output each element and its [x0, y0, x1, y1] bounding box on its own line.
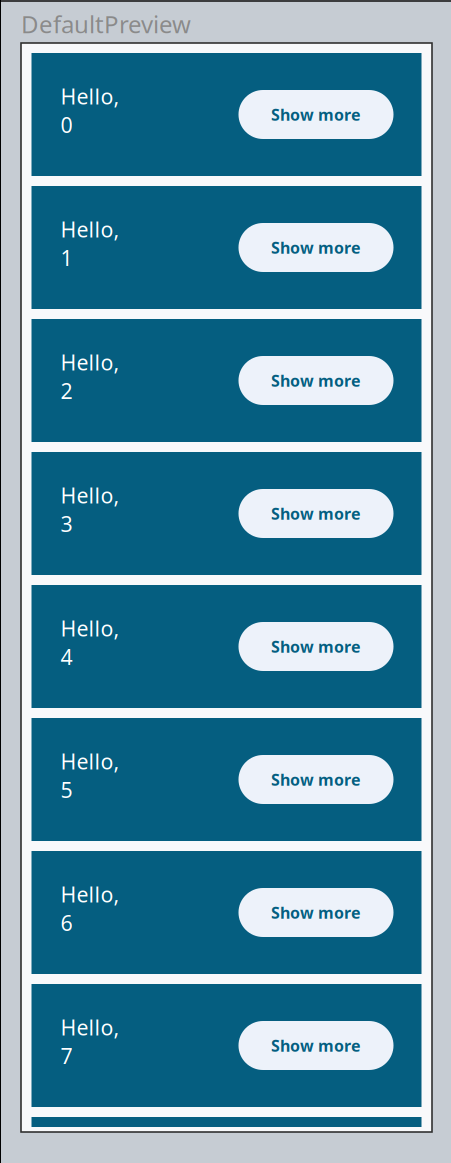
staticText: Show more	[271, 636, 361, 657]
staticText: 0	[60, 110, 72, 139]
staticText: Hello,	[60, 82, 119, 110]
staticText: 6	[60, 908, 72, 937]
staticText: Hello,	[60, 880, 119, 908]
staticText: Hello,	[60, 481, 119, 509]
staticText: Show more	[271, 769, 361, 790]
staticText: 1	[60, 243, 72, 272]
staticText: 5	[60, 775, 72, 804]
staticText: Show more	[271, 902, 361, 923]
button[interactable]: Show more	[238, 622, 393, 671]
button[interactable]: Show more	[238, 1021, 393, 1070]
staticText: Show more	[271, 1035, 361, 1056]
button[interactable]: Show more	[238, 223, 393, 272]
staticText: Hello,	[60, 348, 119, 376]
staticText: Hello,	[60, 747, 119, 775]
staticText: Show more	[271, 503, 361, 524]
staticText: Hello,	[60, 1013, 119, 1041]
button[interactable]: Show more	[238, 489, 393, 538]
staticText: Hello,	[60, 215, 119, 243]
staticText: 7	[60, 1041, 72, 1070]
button[interactable]: Show more	[238, 888, 393, 937]
staticText: 2	[60, 376, 72, 405]
button[interactable]: Show more	[238, 90, 393, 139]
staticText: Show more	[271, 370, 361, 391]
button[interactable]: Show more	[238, 356, 393, 405]
staticText: DefaultPreview	[21, 8, 191, 40]
staticText: Hello,	[60, 614, 119, 642]
staticText: Show more	[271, 104, 361, 125]
staticText: 3	[60, 509, 72, 538]
staticText: Show more	[271, 237, 361, 258]
button[interactable]: Show more	[238, 755, 393, 804]
staticText: 4	[60, 642, 72, 671]
